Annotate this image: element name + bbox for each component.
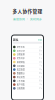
staticText: 31: [38, 76, 40, 78]
staticText: 08: [38, 50, 40, 52]
button[interactable]: 协作任务: [11, 45, 43, 49]
button[interactable]: 消息通知: [11, 64, 43, 68]
staticText: 17: [38, 65, 40, 67]
staticText: 多人协作管理: [12, 8, 42, 14]
staticText: 03: [38, 61, 40, 63]
button[interactable]: 日程安排: [11, 53, 43, 56]
button[interactable]: 日报周报: [11, 87, 43, 90]
button[interactable]: 数据统计: [11, 71, 43, 75]
staticText: 06: [38, 80, 40, 82]
staticText: 21: [38, 57, 40, 59]
staticText: 协作任务: [17, 46, 25, 48]
staticText: 审批流程: [17, 61, 25, 63]
button[interactable]: 工作台面: [11, 79, 43, 83]
staticText: 07: [38, 87, 40, 89]
staticText: 新建: [38, 38, 42, 41]
staticText: 工作台面: [17, 79, 25, 82]
staticText: 团队: [13, 38, 19, 42]
staticText: 05: [38, 53, 40, 56]
staticText: 数据统计: [17, 72, 25, 75]
button[interactable]: 知识文档: [11, 75, 43, 79]
staticText: 09: [38, 72, 40, 74]
staticText: 日程安排: [17, 53, 25, 56]
button[interactable]: 成员管理: [11, 68, 43, 71]
button[interactable]: 审批流程: [11, 60, 43, 64]
button[interactable]: 客户列表: [11, 83, 43, 86]
button[interactable]: 项目计划: [11, 49, 43, 53]
staticText: 文件共享: [17, 57, 25, 60]
staticText: 消息通知: [17, 64, 25, 67]
staticText: 24: [38, 68, 40, 71]
button[interactable]: 文件共享: [11, 56, 43, 60]
staticText: 高效协同 · 实时同步: [13, 17, 42, 21]
staticText: 14: [38, 84, 40, 86]
staticText: 客户列表: [17, 83, 25, 86]
staticText: 成员管理: [17, 68, 25, 71]
staticText: 日报周报: [17, 87, 25, 90]
staticText: 12: [38, 46, 40, 48]
staticText: 知识文档: [17, 76, 25, 78]
staticText: 项目计划: [17, 49, 25, 52]
